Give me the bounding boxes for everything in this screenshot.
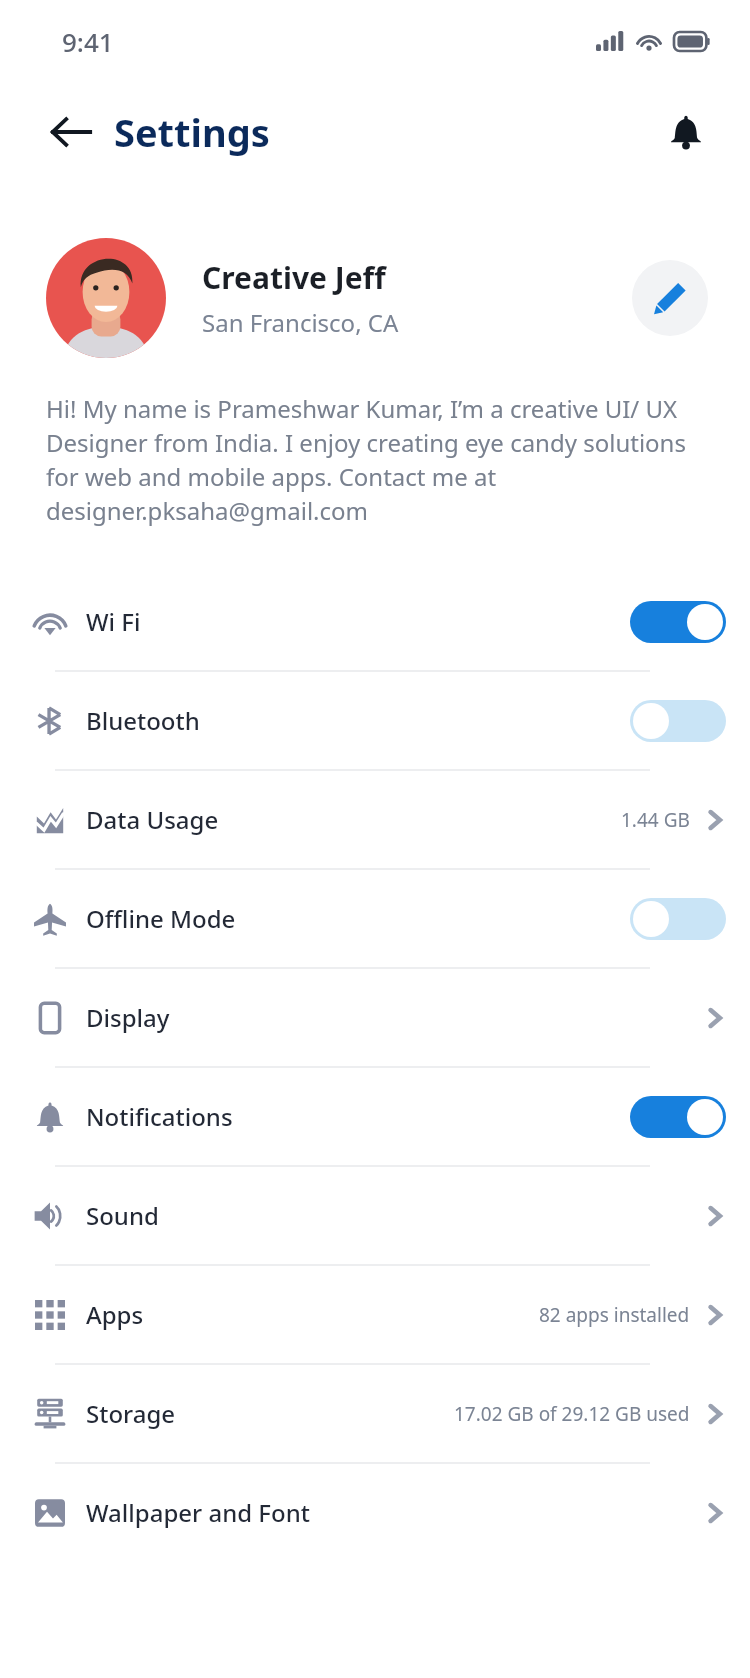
staticText: Wallpaper and Font xyxy=(86,1496,310,1529)
staticText: Apps xyxy=(86,1298,144,1331)
button[interactable]: Off xyxy=(630,898,726,940)
staticText: Display xyxy=(86,1001,170,1034)
other: Wallpaper and Font xyxy=(704,1502,726,1524)
staticText: Creative Jeff xyxy=(202,257,386,298)
staticText: Wi Fi xyxy=(86,605,141,638)
other: Storage xyxy=(704,1403,726,1425)
staticText: 82 apps installed xyxy=(539,1302,690,1328)
button[interactable]: Notifications xyxy=(664,110,708,154)
button[interactable]: Off xyxy=(630,700,726,742)
button[interactable]: Offline Mode xyxy=(0,870,750,969)
staticText: Sound xyxy=(86,1199,159,1232)
button[interactable]: Data Usage xyxy=(0,771,750,870)
button[interactable]: Sound xyxy=(0,1167,750,1266)
button[interactable]: On xyxy=(630,601,726,643)
other: Data Usage xyxy=(704,809,726,831)
button[interactable]: Wallpaper and Font xyxy=(0,1464,750,1561)
staticText: Data Usage xyxy=(86,803,219,836)
button[interactable]: Notifications xyxy=(0,1068,750,1167)
staticText: Settings xyxy=(114,106,270,158)
staticText: 9:41 xyxy=(62,24,114,59)
staticText: Notifications xyxy=(86,1100,233,1133)
staticText: Storage xyxy=(86,1397,176,1430)
button[interactable]: Storage xyxy=(0,1365,750,1464)
staticText: 17.02 GB of 29.12 GB used xyxy=(454,1401,690,1427)
other: Sound xyxy=(704,1205,726,1227)
other: Apps xyxy=(704,1304,726,1326)
button[interactable]: Wi Fi xyxy=(0,573,750,672)
button[interactable]: Back xyxy=(48,109,94,155)
staticText: Hi! My name is Prameshwar Kumar, I’m a c… xyxy=(46,392,722,527)
staticText: 1.44 GB xyxy=(621,807,690,833)
button[interactable]: Edit profile xyxy=(632,260,708,336)
button[interactable]: On xyxy=(630,1096,726,1138)
staticText: San Francisco, CA xyxy=(202,306,399,339)
button[interactable]: Apps xyxy=(0,1266,750,1365)
button[interactable]: Bluetooth xyxy=(0,672,750,771)
button[interactable]: Display xyxy=(0,969,750,1068)
staticText: Offline Mode xyxy=(86,902,236,935)
button[interactable]: Creative Jeff xyxy=(46,238,708,358)
staticText: Bluetooth xyxy=(86,704,200,737)
other: Display xyxy=(704,1007,726,1029)
